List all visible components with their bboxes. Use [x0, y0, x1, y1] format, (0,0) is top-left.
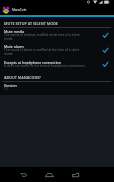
- other: Toggle Mute alarm: [100, 45, 111, 56]
- other: Toggle Mute media: [100, 30, 111, 41]
- staticText: Mute media: [4, 29, 25, 34]
- staticText: ABOUT MANACOIN?: [4, 75, 41, 80]
- staticText: ManaCoin: [12, 8, 27, 12]
- button[interactable]: Excepts at headphone connection: [0, 58, 114, 71]
- button[interactable]: Mute alarm: [0, 43, 114, 58]
- button[interactable]: Home: [43, 168, 56, 181]
- button[interactable]: Recents: [69, 168, 82, 181]
- button[interactable]: Mute media: [0, 28, 114, 43]
- staticText: 1.1: [4, 87, 9, 91]
- staticText: The sound of alarm is muffled at the tim…: [4, 48, 87, 56]
- button[interactable]: Back: [17, 168, 30, 181]
- staticText: The sound of medium muffled at the time …: [4, 33, 87, 41]
- staticText: MUTE SETUP AT SILENT MODE: [4, 21, 58, 26]
- staticText: Mute alarm: [4, 44, 24, 49]
- staticText: Excepts at headphone connection: [4, 60, 61, 65]
- button[interactable]: ManaCoin: [0, 5, 114, 15]
- staticText: It does not muffle at the time of headph…: [4, 64, 85, 68]
- other: Toggle Excepts at headphone connection: [100, 59, 111, 70]
- button[interactable]: Version: [0, 82, 114, 95]
- staticText: Version: [4, 83, 17, 88]
